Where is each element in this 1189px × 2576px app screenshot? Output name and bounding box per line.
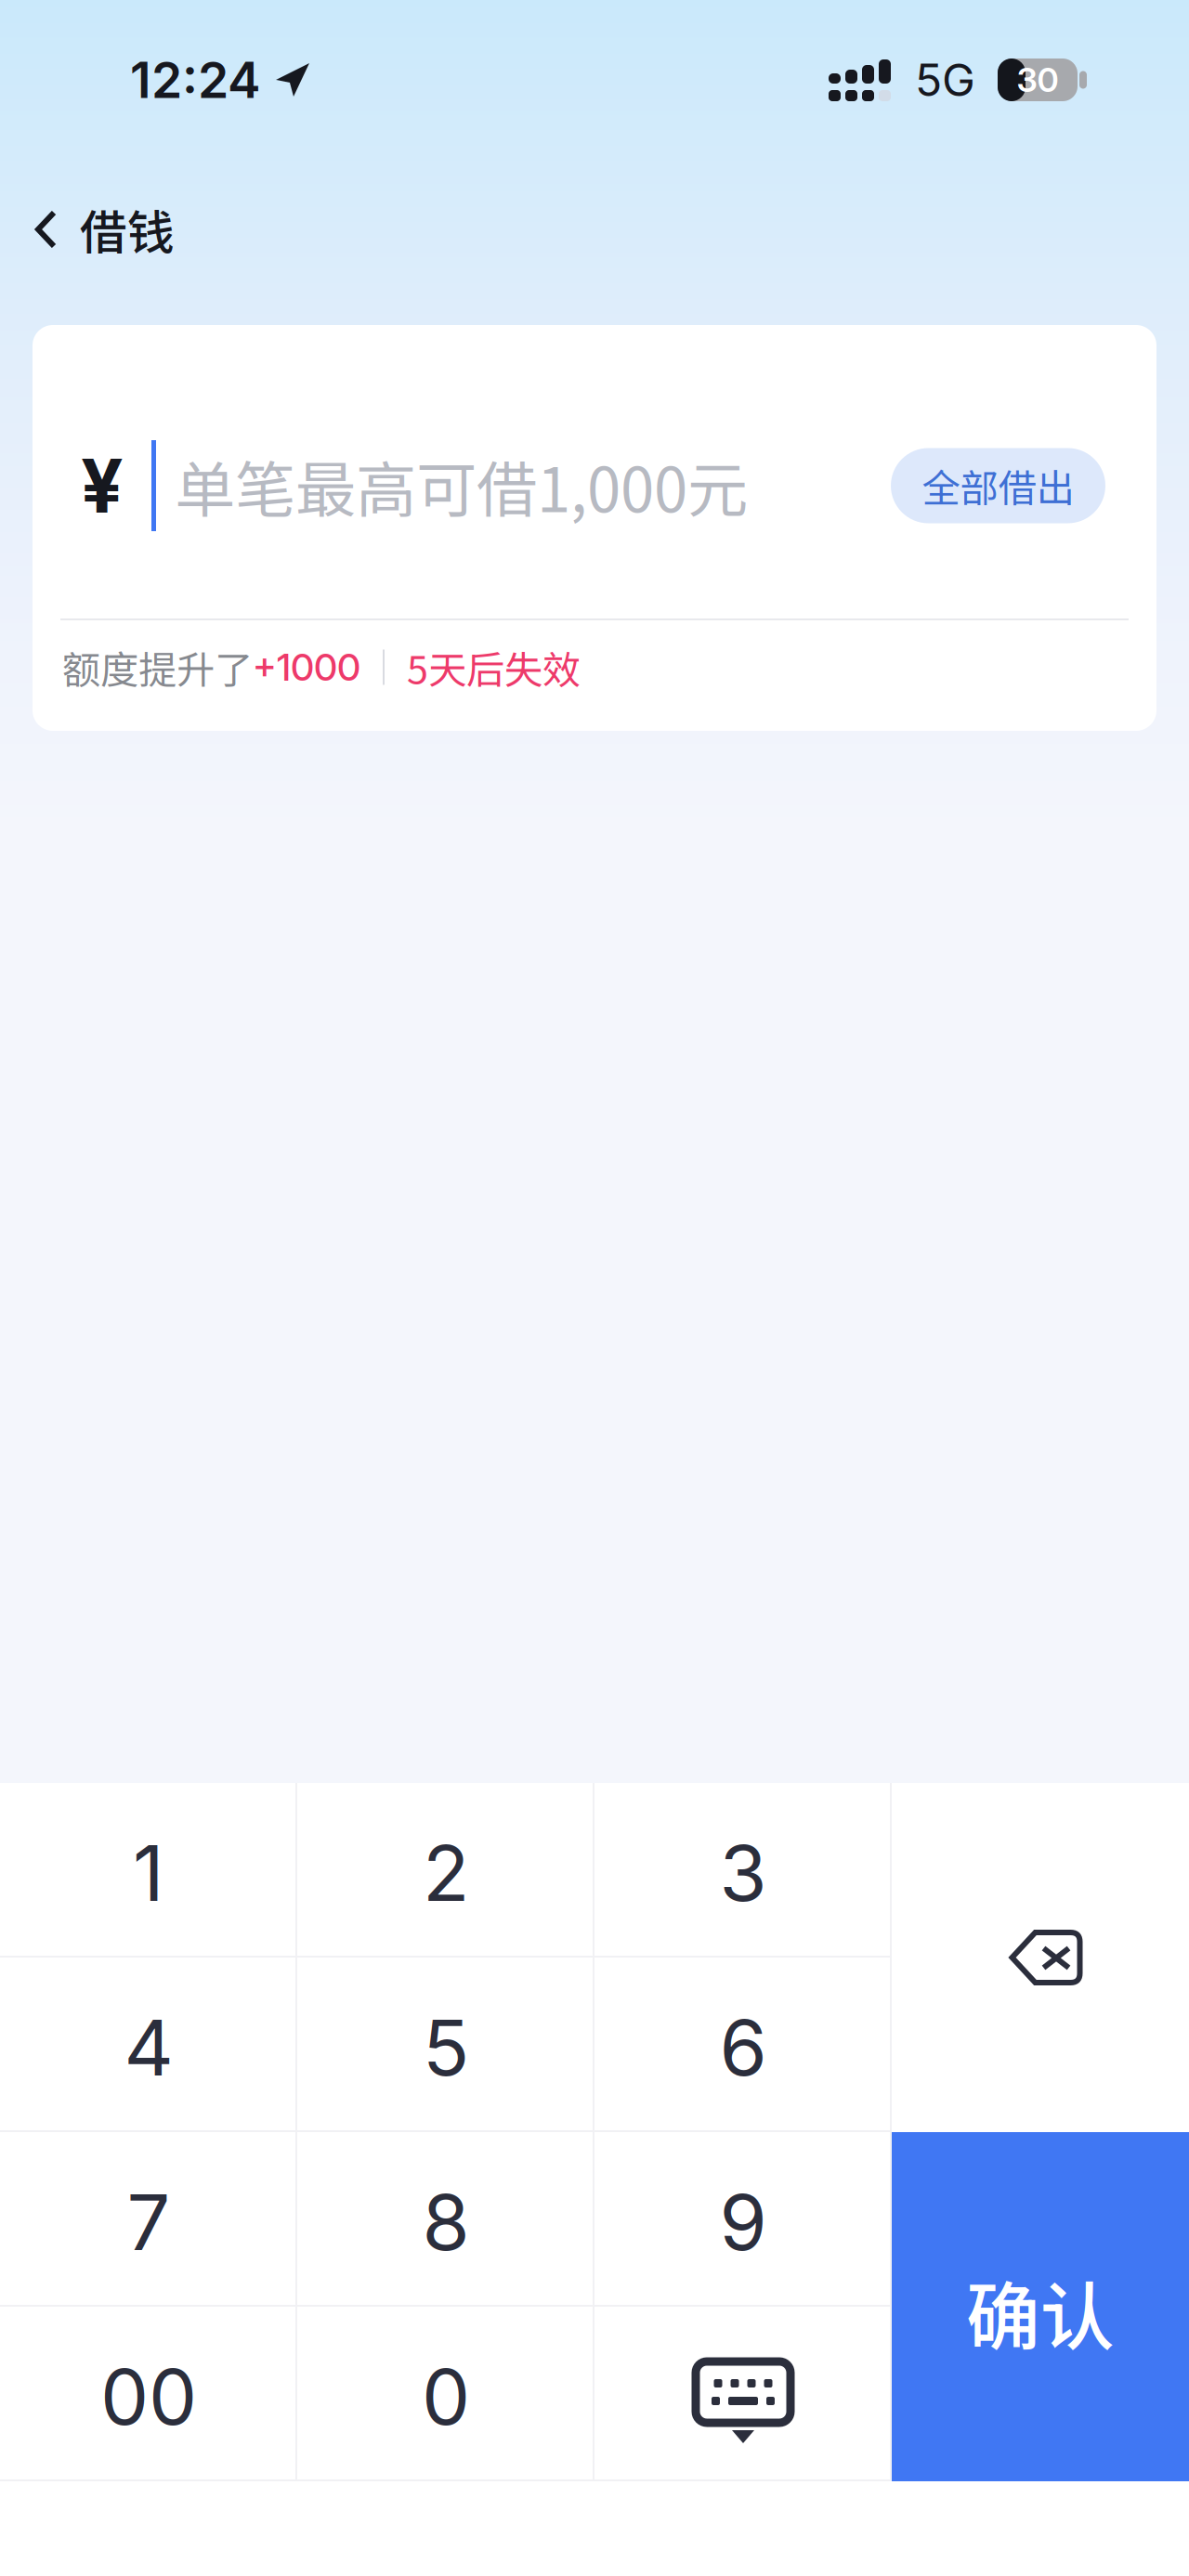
button[interactable]: Delete [892, 1783, 1189, 2132]
staticText: +1000 [253, 645, 360, 690]
button[interactable]: 9 [594, 2132, 892, 2307]
staticText: 5 [423, 2001, 469, 2094]
button[interactable]: 借钱 [0, 169, 199, 291]
staticText: 全部借出 [922, 458, 1074, 514]
staticText: 6 [719, 2001, 767, 2094]
staticText: 8 [422, 2176, 470, 2269]
staticText: 5G [915, 53, 975, 107]
button[interactable]: 7 [0, 2132, 297, 2307]
button[interactable]: 全部借出 [891, 448, 1105, 523]
staticText: 借钱 [80, 195, 175, 263]
staticText: 5天后失效 [407, 639, 581, 695]
button[interactable]: 4 [0, 1958, 297, 2132]
staticText: 00 [100, 2350, 197, 2443]
staticText: 4 [124, 2001, 173, 2094]
staticText: 12:24 [130, 50, 261, 110]
button[interactable]: 0 [297, 2307, 594, 2481]
button[interactable]: 00 [0, 2307, 297, 2481]
button[interactable]: Hide keyboard [594, 2307, 892, 2481]
staticText: 7 [127, 2176, 170, 2269]
button[interactable]: 6 [594, 1958, 892, 2132]
button[interactable]: 3 [594, 1783, 892, 1958]
button[interactable]: 8 [297, 2132, 594, 2307]
button[interactable]: 确认 [892, 2132, 1189, 2481]
staticText: 30 [1017, 60, 1058, 100]
button[interactable]: 2 [297, 1783, 594, 1958]
button[interactable]: 1 [0, 1783, 297, 1958]
button[interactable]: 5 [297, 1958, 594, 2132]
staticText: 单笔最高可借1,000元 [175, 442, 748, 530]
staticText: 确认 [966, 2258, 1115, 2365]
staticText: 3 [719, 1827, 767, 1919]
staticText: 1 [133, 1827, 164, 1919]
staticText: 9 [719, 2176, 767, 2269]
staticText: 2 [423, 1827, 469, 1919]
staticText: ¥ [81, 441, 124, 531]
staticText: 额度提升了 [62, 639, 253, 695]
staticText: 0 [422, 2350, 470, 2443]
